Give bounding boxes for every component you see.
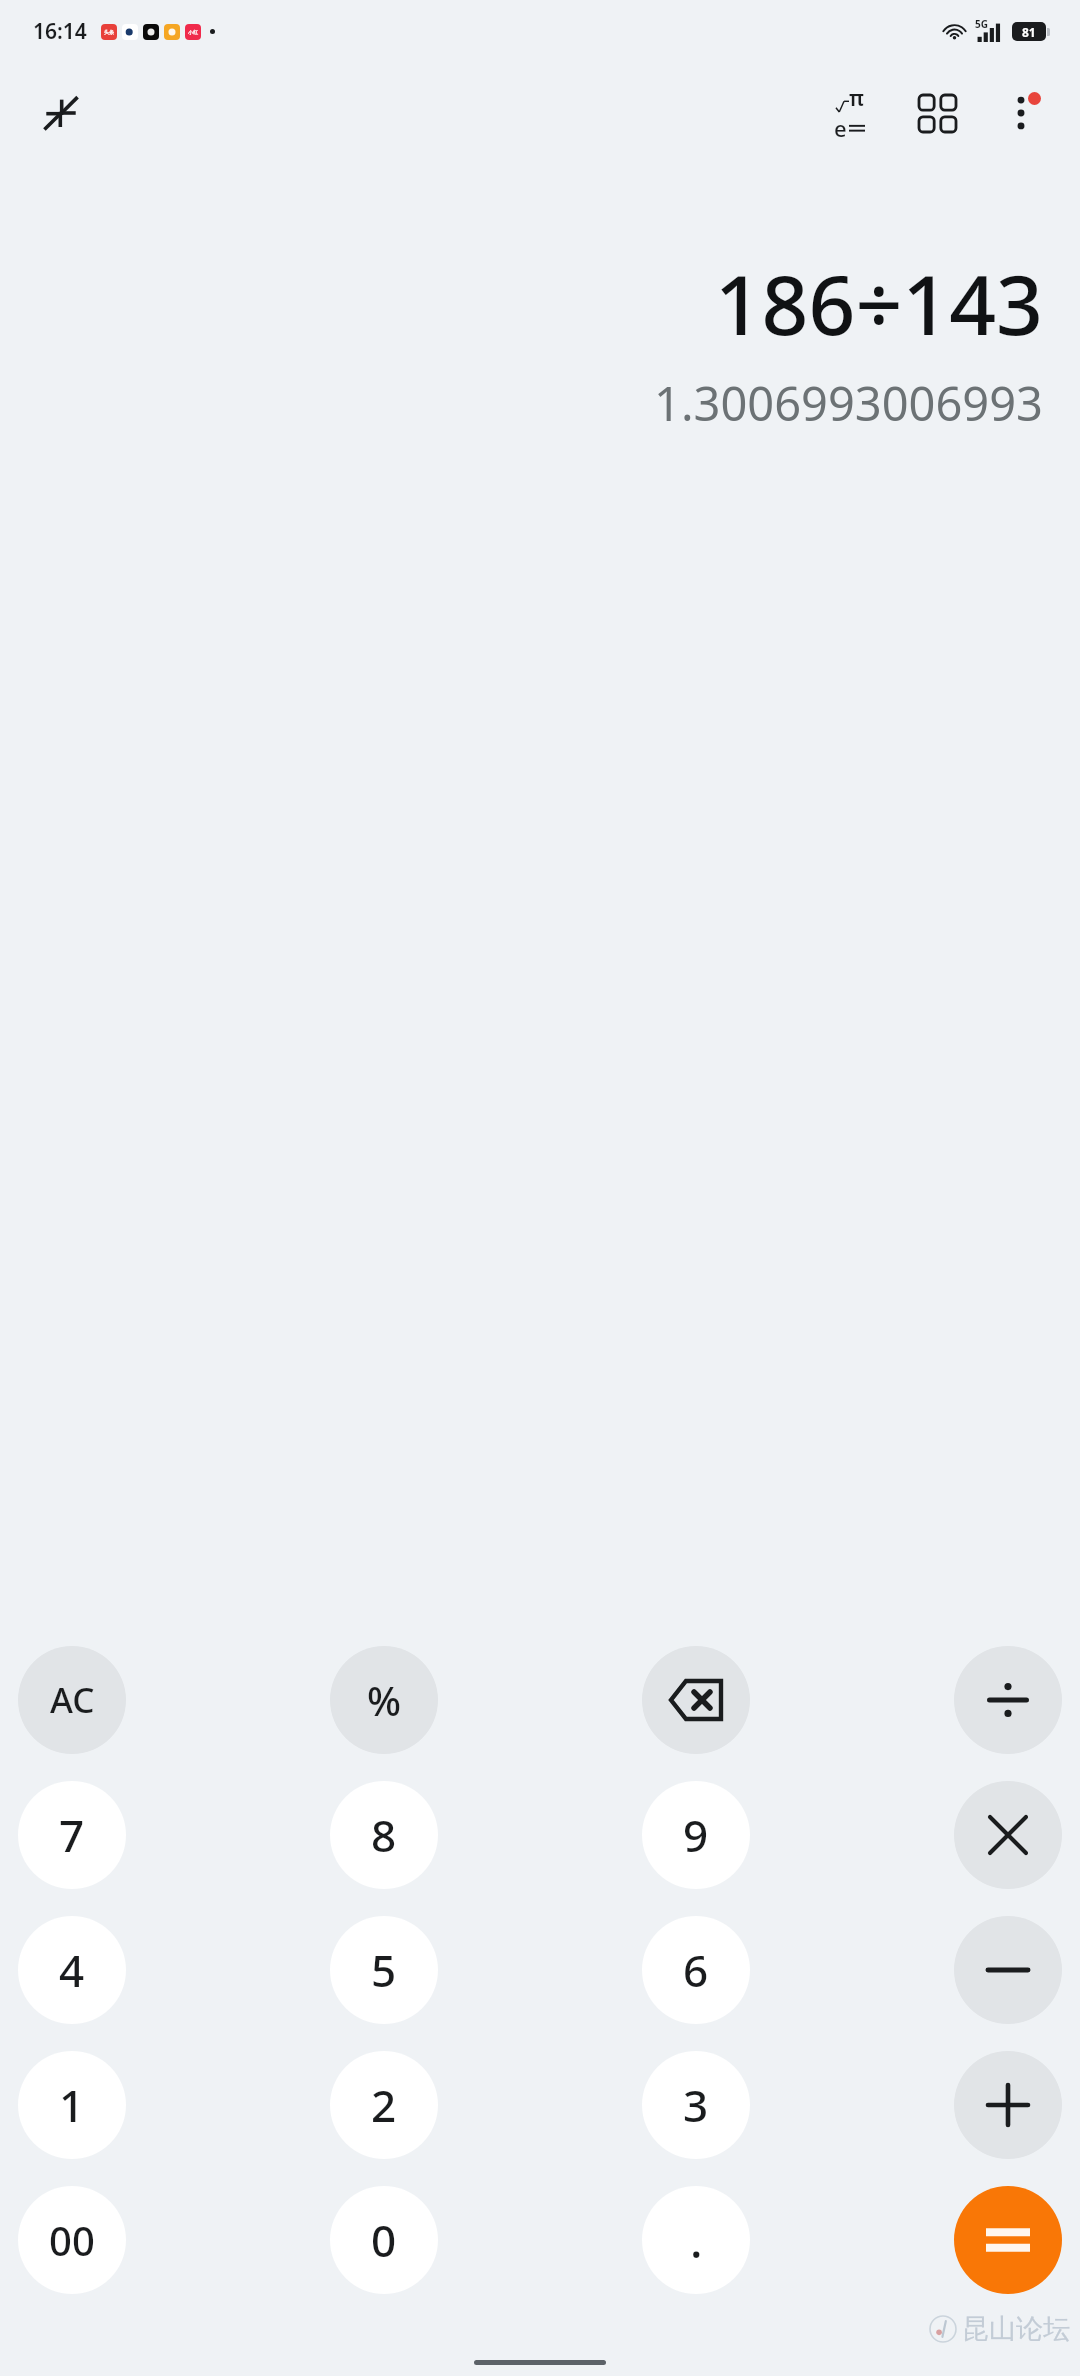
staticText: 3	[683, 2075, 709, 2135]
button[interactable]: Keypad layout	[902, 78, 972, 148]
button[interactable]: 4	[18, 1916, 126, 2024]
staticText: .	[690, 2209, 703, 2272]
button[interactable]: Scientific mode	[814, 78, 884, 148]
staticText: 5	[371, 1940, 397, 2000]
staticText: 8	[371, 1805, 397, 1865]
staticText: 00	[49, 2213, 95, 2267]
staticText: 0	[371, 2210, 397, 2270]
staticText: 小红	[188, 29, 198, 35]
staticText: 5G	[975, 17, 988, 31]
staticText: 2	[371, 2075, 397, 2135]
button[interactable]: 0	[330, 2186, 438, 2294]
staticText: 81	[1022, 24, 1036, 40]
button[interactable]: 1	[18, 2051, 126, 2159]
staticText: 7	[59, 1805, 85, 1865]
button[interactable]: 6	[642, 1916, 750, 2024]
button[interactable]: 7	[18, 1781, 126, 1889]
staticText: 头条	[104, 29, 114, 35]
staticText: 1	[59, 2075, 85, 2135]
button[interactable]: Divide	[954, 1646, 1062, 1754]
button[interactable]: Multiply	[954, 1781, 1062, 1889]
button[interactable]: Equals	[954, 2186, 1062, 2294]
staticText: 9	[683, 1805, 709, 1865]
staticText: 4	[59, 1940, 85, 2000]
staticText: 1.3006993006993	[654, 371, 1043, 435]
staticText: 昆山论坛	[962, 2312, 1070, 2346]
button[interactable]: Collapse	[30, 82, 92, 144]
staticText: 16:14	[33, 17, 87, 46]
staticText: %	[367, 1673, 402, 1727]
button[interactable]: 5	[330, 1916, 438, 2024]
button[interactable]: 8	[330, 1781, 438, 1889]
staticText: 186÷143	[714, 247, 1043, 359]
button[interactable]: AC	[18, 1646, 126, 1754]
staticText: 6	[683, 1940, 709, 2000]
staticText: e	[834, 113, 847, 143]
staticText: AC	[50, 1676, 95, 1724]
button[interactable]: Plus	[954, 2051, 1062, 2159]
button[interactable]: 3	[642, 2051, 750, 2159]
button[interactable]: 9	[642, 1781, 750, 1889]
button[interactable]: %	[330, 1646, 438, 1754]
button[interactable]: Backspace	[642, 1646, 750, 1754]
button[interactable]: 2	[330, 2051, 438, 2159]
button[interactable]: .	[642, 2186, 750, 2294]
button[interactable]: More options	[986, 78, 1056, 148]
staticText: π	[849, 84, 864, 113]
button[interactable]: 00	[18, 2186, 126, 2294]
button[interactable]: Minus	[954, 1916, 1062, 2024]
